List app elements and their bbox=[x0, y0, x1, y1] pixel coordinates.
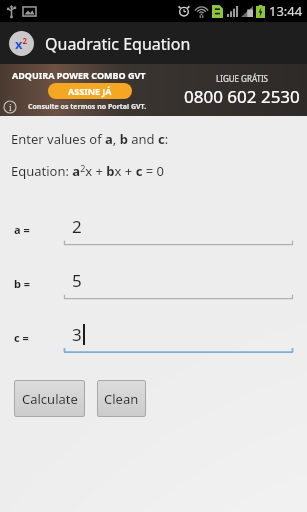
button[interactable]: Ad information bbox=[3, 100, 17, 114]
staticText: LIGUE GRÁTIS bbox=[216, 73, 269, 84]
button[interactable]: 5 bbox=[64, 266, 293, 300]
button[interactable]: ASSINE JÁ bbox=[48, 83, 132, 99]
staticText: i bbox=[9, 102, 12, 113]
button[interactable]: Clean bbox=[97, 380, 146, 417]
staticText: Consulte os termos no Portal GVT. bbox=[28, 102, 147, 112]
staticText: Clean bbox=[104, 390, 139, 408]
staticText: Quadratic Equation bbox=[45, 33, 191, 55]
staticText: 13:44 bbox=[269, 2, 303, 20]
staticText: ADQUIRA POWER COMBO GVT bbox=[12, 69, 146, 81]
staticText: ASSINE JÁ bbox=[68, 85, 112, 97]
staticText: b = bbox=[14, 276, 31, 291]
button[interactable]: 3 bbox=[64, 320, 293, 354]
staticText: Calculate bbox=[22, 390, 78, 408]
staticText: 0800 602 2530 bbox=[184, 85, 300, 108]
staticText: 3 bbox=[72, 323, 82, 346]
button[interactable]: Calculate bbox=[14, 380, 85, 417]
staticText: 2 bbox=[72, 215, 82, 238]
staticText: x2 bbox=[15, 35, 28, 53]
staticText: Equation: a2x + bx + c = 0 bbox=[11, 162, 164, 180]
staticText: 5 bbox=[72, 269, 82, 292]
staticText: a = bbox=[14, 222, 30, 237]
button[interactable]: 2 bbox=[64, 212, 293, 246]
staticText: Enter values of a, b and c: bbox=[11, 130, 169, 148]
staticText: c = bbox=[14, 330, 29, 345]
button[interactable]: ADQUIRA POWER COMBO GVT bbox=[0, 64, 307, 116]
button[interactable]: x2 bbox=[9, 31, 195, 56]
